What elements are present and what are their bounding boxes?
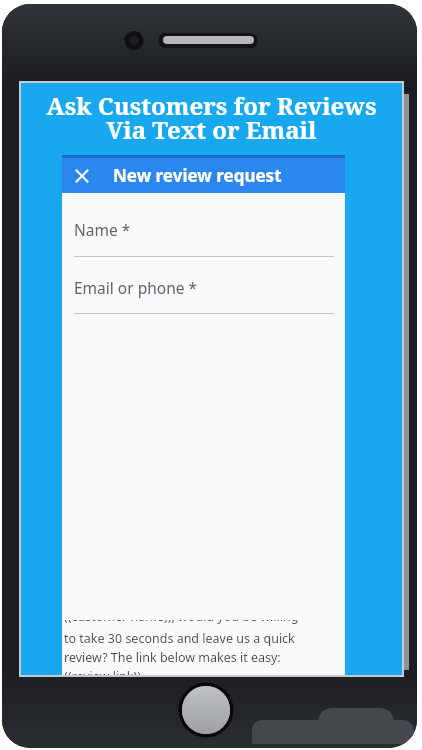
staticText: Email or phone * <box>74 277 198 298</box>
staticText: ((customer name)), would you be willing <box>64 620 299 625</box>
staticText: Name * <box>74 219 131 240</box>
staticText: Via Text or Email <box>21 113 402 146</box>
staticText: New review request <box>113 164 282 187</box>
button[interactable]: Email or phone * <box>62 258 345 315</box>
staticText: Ask Customers for Reviews <box>21 89 402 122</box>
staticText: ((review link)) <box>64 668 142 675</box>
button[interactable] <box>62 158 102 193</box>
button[interactable]: Name * <box>62 200 345 258</box>
staticText: to take 30 seconds and leave us a quick <box>64 630 295 647</box>
button[interactable]: ((customer name)), would you be willing <box>62 620 345 675</box>
staticText: review? The link below makes it easy: <box>64 649 281 666</box>
